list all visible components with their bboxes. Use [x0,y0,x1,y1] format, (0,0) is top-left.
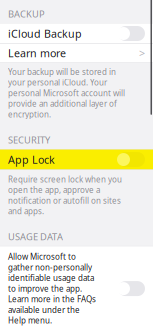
staticText: Your backup will be stored in your perso… [8,66,125,120]
staticText: USAGE DATA [8,230,63,243]
staticText: Require screen lock when you open the ap… [8,174,122,216]
staticText: iCloud Backup [8,26,82,41]
staticText: App Lock [8,152,55,167]
staticText: BACKUP [8,8,45,20]
staticText: Allow Microsoft to gather non-personally… [8,251,96,326]
button[interactable]: Allow Microsoft to gather non-personally… [0,246,153,329]
staticText: Learn more [8,46,66,60]
staticText: > [139,46,145,60]
staticText: SECURITY [8,134,50,146]
button[interactable]: Learn more [0,44,153,62]
button[interactable]: iCloud Backup [0,23,153,44]
button[interactable]: App Lock [0,149,153,170]
